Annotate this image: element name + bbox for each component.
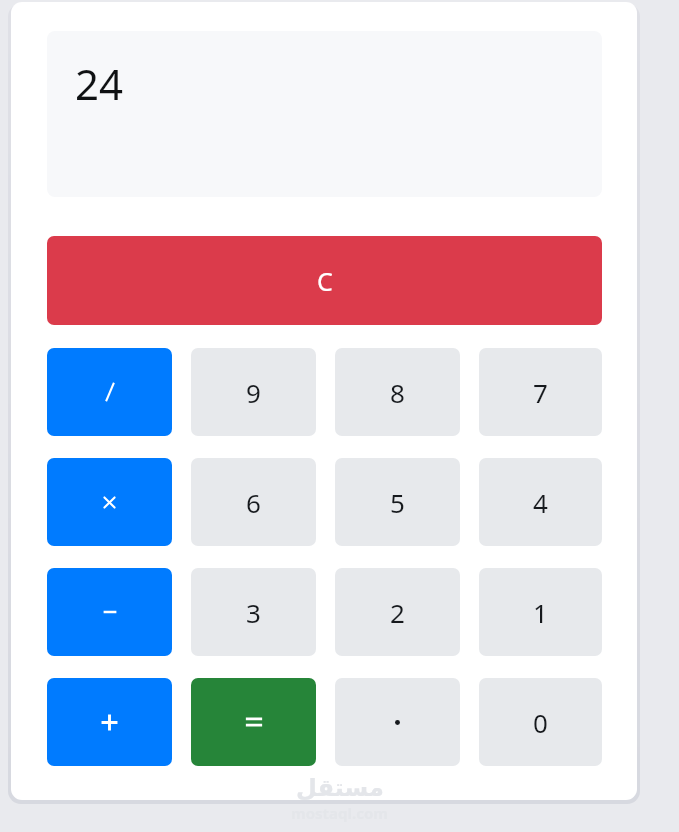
button[interactable]: 7: [479, 348, 602, 436]
button[interactable]: 6: [191, 458, 316, 546]
button[interactable]: 3: [191, 568, 316, 656]
button[interactable]: 5: [335, 458, 460, 546]
staticText: 8: [390, 375, 405, 410]
staticText: 5: [390, 485, 405, 520]
button[interactable]: 9: [191, 348, 316, 436]
staticText: 4: [533, 485, 548, 520]
staticText: 1: [533, 595, 548, 630]
button[interactable]: 4: [479, 458, 602, 546]
staticText: 9: [246, 375, 261, 410]
button[interactable]: Add: [47, 678, 172, 766]
staticText: C: [317, 264, 333, 298]
staticText: 6: [246, 485, 261, 520]
staticText: 2: [390, 595, 405, 630]
button[interactable]: Subtract: [47, 568, 172, 656]
staticText: 3: [246, 595, 261, 630]
staticText: mostaql.com: [291, 803, 388, 823]
button[interactable]: 24: [47, 31, 602, 197]
button[interactable]: 0: [479, 678, 602, 766]
button[interactable]: 1: [479, 568, 602, 656]
button[interactable]: Divide: [47, 348, 172, 436]
button[interactable]: Multiply: [47, 458, 172, 546]
staticText: 24: [75, 55, 124, 112]
staticText: مستقل: [296, 774, 384, 802]
button[interactable]: Equals: [191, 678, 316, 766]
button[interactable]: 2: [335, 568, 460, 656]
button[interactable]: Decimal point: [335, 678, 460, 766]
staticText: 0: [533, 705, 548, 740]
button[interactable]: 8: [335, 348, 460, 436]
button[interactable]: C: [47, 236, 602, 325]
staticText: 7: [533, 375, 548, 410]
